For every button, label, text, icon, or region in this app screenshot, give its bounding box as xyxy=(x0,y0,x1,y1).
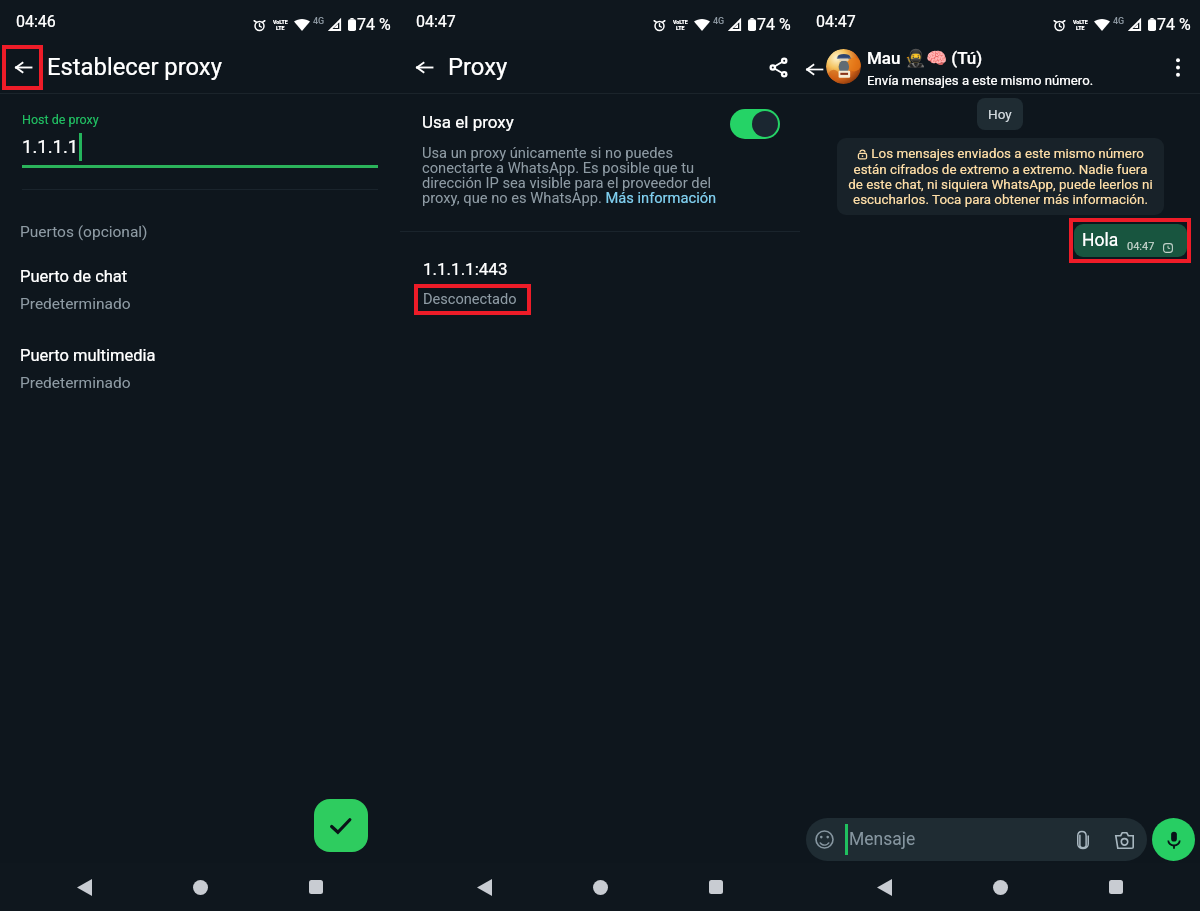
button[interactable]: Puerto de chat xyxy=(0,267,400,313)
button[interactable]: L Los mensajes enviados a este mismo núm… xyxy=(837,138,1164,215)
staticText: Establecer proxy xyxy=(47,53,222,81)
staticText: Usa el proxy xyxy=(422,112,514,132)
staticText: Predeterminado xyxy=(20,295,131,313)
staticText: VoLTE xyxy=(273,19,288,25)
button[interactable]: Mensaje xyxy=(806,818,1147,861)
staticText: 4G xyxy=(713,16,725,27)
staticText: 74 % xyxy=(1157,15,1191,34)
staticText: Proxy xyxy=(448,53,508,81)
staticText: 04:47 xyxy=(816,12,856,31)
staticText: Usa un proxy únicamente si no puedes con… xyxy=(422,144,722,207)
button[interactable]: Home xyxy=(980,867,1020,907)
button[interactable]: Home xyxy=(580,867,620,907)
staticText: 1.1.1.1:443 xyxy=(423,259,508,279)
staticText: Host de proxy xyxy=(22,112,99,127)
staticText: 04:46 xyxy=(16,12,56,31)
button[interactable]: Voice message xyxy=(1152,818,1195,861)
staticText: Envía mensajes a este mismo número. xyxy=(867,73,1094,88)
button[interactable]: Back xyxy=(64,867,104,907)
button[interactable]: Attach xyxy=(1072,829,1094,851)
staticText: Puerto multimedia xyxy=(20,346,156,365)
button[interactable]: Hoy xyxy=(977,98,1023,130)
button[interactable]: Usa el proxy xyxy=(730,109,780,139)
button[interactable]: Back xyxy=(804,59,824,79)
staticText: LTE xyxy=(276,25,285,31)
staticText: VoLTE xyxy=(673,19,688,25)
staticText: Desconectado xyxy=(423,290,517,307)
staticText: LTE xyxy=(1076,25,1085,31)
button[interactable]: Usa el proxy xyxy=(400,94,800,231)
button[interactable]: Back xyxy=(410,53,438,81)
button[interactable]: Home xyxy=(180,867,220,907)
button[interactable]: 1.1.1.1:443 xyxy=(400,232,800,323)
button[interactable]: Hola xyxy=(1074,224,1187,257)
staticText: Mensaje xyxy=(849,829,916,850)
staticText: Hoy xyxy=(988,106,1012,122)
staticText: 1.1.1.1 xyxy=(22,136,79,158)
staticText: Mau 🥷🧠 (Tú) xyxy=(867,48,983,68)
staticText: LTE xyxy=(676,25,685,31)
button[interactable]: Share xyxy=(762,51,794,83)
button[interactable]: Recent apps xyxy=(696,867,736,907)
staticText: Hola xyxy=(1082,230,1119,251)
button[interactable]: Back xyxy=(9,53,37,81)
button[interactable]: Back xyxy=(464,867,504,907)
staticText: 04:47 xyxy=(416,12,456,31)
button[interactable]: Puerto multimedia xyxy=(0,346,400,392)
staticText: L Los mensajes enviados a este mismo núm… xyxy=(846,146,1155,207)
staticText: Puertos (opcional) xyxy=(20,223,148,241)
staticText: 74 % xyxy=(357,15,391,34)
button[interactable]: Back xyxy=(864,867,904,907)
staticText: Puerto de chat xyxy=(20,267,128,286)
button[interactable]: More options xyxy=(1165,54,1191,80)
button[interactable]: Profile photo xyxy=(826,49,861,84)
button[interactable]: Recent apps xyxy=(1096,867,1136,907)
staticText: 04:47 xyxy=(1127,240,1155,253)
staticText: VoLTE xyxy=(1073,19,1088,25)
staticText: 4G xyxy=(313,16,325,27)
staticText: 4G xyxy=(1113,16,1125,27)
staticText: Predeterminado xyxy=(20,374,131,392)
button[interactable]: Camera xyxy=(1113,829,1135,851)
button[interactable]: Back xyxy=(800,40,1200,93)
button[interactable]: Recent apps xyxy=(296,867,336,907)
button[interactable]: Guardar xyxy=(314,799,368,852)
staticText: 74 % xyxy=(757,15,791,34)
